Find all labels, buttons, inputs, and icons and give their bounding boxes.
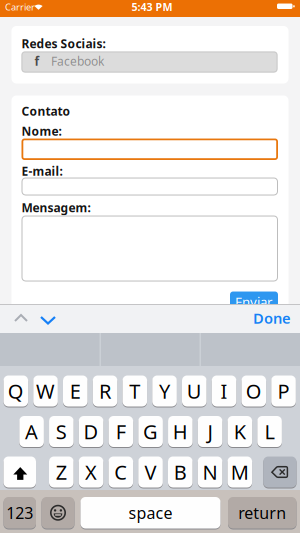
staticText: A: [25, 418, 38, 445]
button[interactable]: Nome: [21, 138, 278, 160]
staticText: 5:43 PM: [131, 0, 172, 14]
staticText: Mensagem:: [21, 199, 90, 215]
staticText: N: [203, 459, 218, 485]
staticText: B: [174, 459, 187, 485]
staticText: Y: [159, 378, 170, 404]
button[interactable]: Numbers: [3, 496, 36, 529]
button[interactable]: O: [241, 375, 266, 407]
staticText: F: [116, 418, 126, 445]
staticText: J: [208, 418, 213, 445]
button[interactable]: A: [19, 415, 44, 447]
button[interactable]: B: [168, 456, 193, 488]
staticText: space: [128, 502, 172, 523]
staticText: Z: [56, 459, 67, 485]
staticText: Facebook: [51, 53, 104, 69]
staticText: Carrier: [5, 1, 35, 13]
staticText: Contato: [21, 103, 70, 119]
button[interactable]: I: [212, 375, 236, 407]
button[interactable]: Delete: [263, 456, 296, 488]
button[interactable]: E-mail: [21, 177, 278, 195]
button[interactable]: Q: [3, 375, 28, 407]
button[interactable]: V: [138, 456, 163, 488]
staticText: T: [129, 378, 140, 404]
button[interactable]: Y: [152, 375, 177, 407]
button[interactable]: U: [182, 375, 207, 407]
staticText: Done: [253, 308, 291, 328]
staticText: O: [246, 378, 262, 404]
staticText: f: [34, 53, 39, 69]
staticText: U: [187, 378, 202, 404]
button[interactable]: Emoji: [41, 496, 74, 529]
button[interactable]: K: [228, 415, 252, 447]
button[interactable]: G: [138, 415, 163, 447]
staticText: D: [84, 418, 99, 445]
staticText: S: [56, 418, 67, 445]
staticText: Nome:: [21, 123, 61, 139]
button[interactable]: Mensagem: [21, 215, 278, 281]
staticText: K: [234, 418, 246, 445]
button[interactable]: C: [108, 456, 133, 488]
button[interactable]: L: [257, 415, 282, 447]
button[interactable]: J: [198, 415, 222, 447]
button[interactable]: P: [271, 375, 296, 407]
button[interactable]: Enviar: [230, 291, 278, 308]
button[interactable]: Z: [49, 456, 74, 488]
staticText: L: [265, 418, 275, 445]
button[interactable]: D: [79, 415, 103, 447]
staticText: E-mail:: [21, 163, 62, 179]
staticText: P: [278, 378, 290, 404]
button[interactable]: N: [198, 456, 222, 488]
button[interactable]: X: [79, 456, 103, 488]
staticText: Q: [8, 378, 24, 404]
staticText: R: [99, 378, 111, 404]
button[interactable]: space: [80, 496, 220, 529]
staticText: 123: [6, 502, 33, 523]
button[interactable]: R: [93, 375, 117, 407]
button[interactable]: T: [122, 375, 147, 407]
staticText: W: [36, 378, 55, 404]
staticText: G: [143, 418, 158, 445]
button[interactable]: Next field: [38, 316, 58, 326]
button[interactable]: F: [108, 415, 133, 447]
staticText: E: [70, 378, 81, 404]
button[interactable]: Done: [253, 308, 291, 328]
button[interactable]: f: [21, 51, 277, 72]
staticText: V: [145, 459, 157, 485]
button[interactable]: W: [33, 375, 58, 407]
staticText: Redes Sociais:: [21, 36, 105, 52]
button[interactable]: M: [227, 456, 252, 488]
staticText: X: [85, 459, 97, 485]
button[interactable]: Previous field: [11, 314, 31, 324]
button[interactable]: S: [49, 415, 74, 447]
staticText: Enviar: [235, 293, 273, 310]
button[interactable]: Shift: [3, 456, 36, 488]
staticText: H: [173, 418, 188, 445]
staticText: C: [114, 459, 127, 485]
button[interactable]: E: [63, 375, 88, 407]
staticText: return: [238, 502, 286, 523]
button[interactable]: return: [228, 496, 296, 529]
button[interactable]: H: [168, 415, 193, 447]
staticText: I: [221, 378, 228, 404]
staticText: M: [231, 459, 249, 485]
